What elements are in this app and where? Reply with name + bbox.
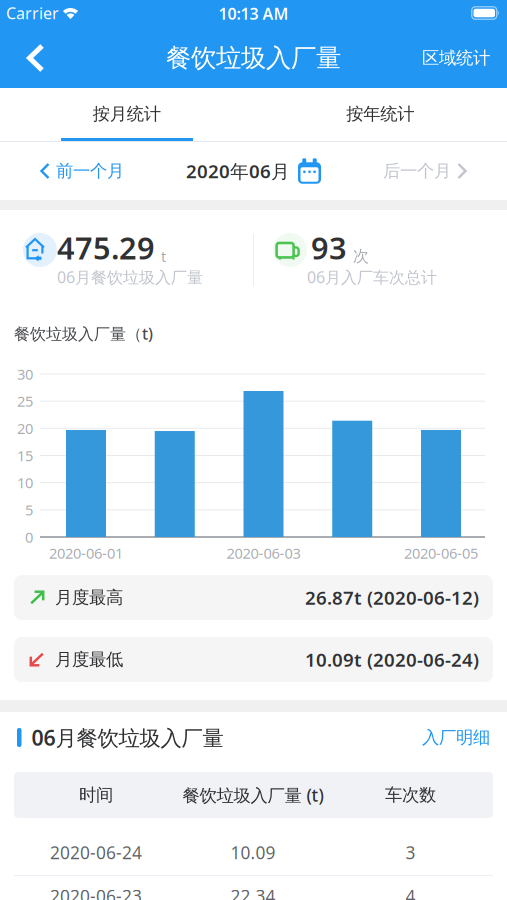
button[interactable]: 区域统计 [422, 47, 507, 69]
staticText: 10.09 [230, 841, 275, 864]
button[interactable]: 前一个月 [0, 160, 124, 182]
staticText: 10:13 AM [218, 3, 288, 24]
staticText: 2020-06-23 [50, 884, 142, 900]
staticText: 前一个月 [56, 160, 124, 182]
staticText: 10 [17, 473, 33, 492]
staticText: 餐饮垃圾入厂量 [166, 42, 341, 73]
staticText: 月度最高 [55, 587, 123, 608]
staticText: 后一个月 [383, 160, 451, 182]
staticText: 2020-06-05 [404, 543, 478, 563]
staticText: 时间 [79, 784, 113, 806]
staticText: 5 [25, 500, 33, 520]
staticText: 06月入厂车次总计 [307, 266, 437, 288]
staticText: t [161, 246, 166, 266]
staticText: 06月餐饮垃圾入厂量 [57, 266, 203, 288]
staticText: 26.87t (2020-06-12) [305, 585, 479, 610]
staticText: 0 [25, 527, 33, 547]
button[interactable]: 按月统计 [0, 88, 253, 140]
staticText: 2020年06月 [186, 159, 290, 183]
button[interactable]: 返回 [0, 44, 44, 72]
staticText: 区域统计 [422, 47, 490, 69]
staticText: 餐饮垃圾入厂量（t) [14, 323, 153, 344]
staticText: 3 [405, 841, 415, 864]
staticText: 2020-06-03 [226, 543, 300, 563]
button[interactable]: 2020年06月 [186, 158, 321, 184]
staticText: 次 [353, 246, 369, 266]
staticText: 按年统计 [346, 103, 414, 125]
staticText: 月度最低 [55, 649, 123, 670]
staticText: 车次数 [385, 784, 436, 806]
staticText: 餐饮垃圾入厂量 (t) [182, 783, 323, 806]
staticText: 2020-06-24 [50, 841, 142, 864]
staticText: 06月餐饮垃圾入厂量 [31, 723, 223, 752]
staticText: 15 [17, 446, 33, 465]
staticText: 按月统计 [93, 103, 161, 125]
staticText: 475.29 [57, 227, 155, 268]
button[interactable]: 入厂明细 [422, 727, 507, 748]
staticText: 25 [17, 391, 33, 411]
button[interactable]: 后一个月 [383, 160, 507, 182]
staticText: 30 [17, 364, 33, 384]
staticText: 93 [311, 227, 347, 268]
staticText: 入厂明细 [422, 727, 490, 748]
staticText: 20 [17, 419, 33, 438]
button[interactable]: 按年统计 [253, 88, 507, 140]
staticText: 4 [405, 884, 415, 900]
staticText: Carrier [6, 2, 59, 24]
staticText: 22.34 [230, 884, 275, 900]
staticText: 2020-06-01 [49, 543, 123, 563]
staticText: 10.09t (2020-06-24) [305, 647, 479, 672]
